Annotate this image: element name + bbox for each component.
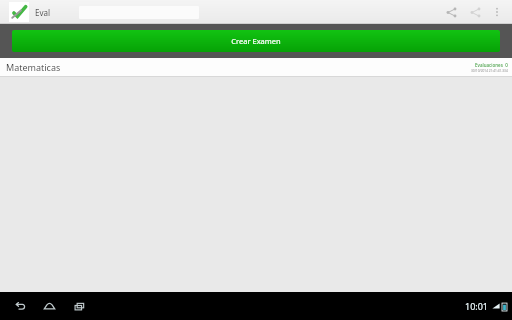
staticText: Crear Examen: [231, 36, 281, 46]
button[interactable]: Share: [440, 1, 462, 23]
button[interactable]: Recent apps: [68, 295, 90, 317]
button[interactable]: Send: [464, 1, 486, 23]
staticText: Evaluaciones 0: [475, 62, 508, 68]
button[interactable]: Matematicas: [0, 58, 512, 76]
staticText: 10:01: [465, 300, 489, 312]
button[interactable]: Back: [8, 295, 30, 317]
button[interactable]: Home: [38, 295, 60, 317]
button[interactable]: More options: [488, 3, 506, 21]
staticText: Matematicas: [6, 61, 61, 73]
button[interactable]: Crear Examen: [12, 30, 500, 52]
staticText: Eval: [35, 7, 51, 18]
staticText: 30/10/2014 21:41:41.334: [471, 69, 508, 73]
button[interactable]: App icon: [9, 2, 29, 22]
